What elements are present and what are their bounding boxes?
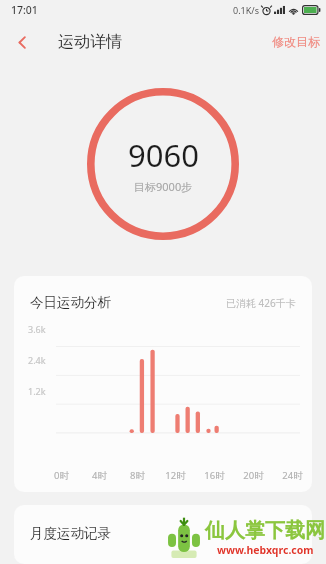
button[interactable]: Back	[0, 20, 44, 64]
button[interactable]: 修改目标	[266, 24, 326, 59]
staticText: 运动详情	[58, 32, 122, 52]
button[interactable]: 今日运动分析	[14, 276, 312, 492]
staticText: 0.1K/s	[233, 4, 259, 16]
staticText: 1.2k	[28, 385, 46, 397]
staticText: 修改目标	[272, 34, 320, 49]
staticText: 仙人掌下载网	[205, 518, 325, 543]
button[interactable]: 月度运动记录	[14, 505, 312, 564]
staticText: 4时	[92, 469, 107, 482]
staticText: 目标9000步	[134, 179, 193, 194]
staticText: 月度运动记录	[30, 525, 111, 542]
staticText: 0时	[54, 469, 69, 482]
staticText: 9060	[128, 134, 199, 176]
staticText: 2.4k	[28, 354, 46, 366]
staticText: www.hebxqrc.com	[217, 543, 314, 557]
staticText: 已消耗 426千卡	[226, 296, 296, 310]
staticText: 24时	[282, 469, 303, 482]
staticText: 8时	[130, 469, 145, 482]
staticText: 今日运动分析	[30, 294, 111, 311]
staticText: 16时	[204, 469, 225, 482]
staticText: 17:01	[11, 3, 38, 17]
staticText: 3.6k	[28, 323, 46, 335]
staticText: 12时	[165, 469, 186, 482]
staticText: 20时	[243, 469, 264, 482]
